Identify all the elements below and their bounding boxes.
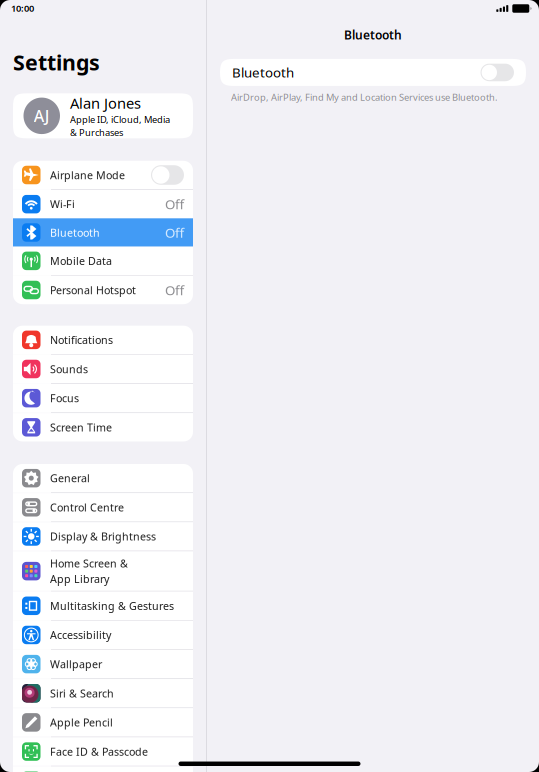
button[interactable]: Battery: [13, 766, 193, 772]
button[interactable]: Wallpaper: [13, 650, 193, 678]
button[interactable]: Face ID & Passcode: [13, 737, 193, 766]
staticText: & Purchases: [70, 126, 123, 138]
staticText: 10:00: [11, 2, 34, 14]
staticText: Focus: [50, 391, 79, 405]
button[interactable]: Multitasking & Gestures: [13, 592, 193, 620]
staticText: AJ: [34, 105, 50, 126]
button[interactable]: Airplane Mode: [13, 161, 193, 189]
staticText: Off: [165, 195, 184, 213]
button[interactable]: Siri & Search: [13, 679, 193, 707]
button[interactable]: Bluetooth: [220, 59, 526, 86]
staticText: Accessibility: [50, 628, 111, 642]
staticText: Wi-Fi: [50, 197, 75, 211]
button[interactable]: Personal Hotspot: [13, 276, 193, 304]
staticText: Multitasking & Gestures: [50, 599, 174, 613]
staticText: Sounds: [50, 362, 88, 376]
staticText: Settings: [13, 48, 100, 76]
button[interactable]: Screen Time: [13, 413, 193, 441]
staticText: Alan Jones: [70, 93, 141, 113]
button[interactable]: Sounds: [13, 355, 193, 383]
button[interactable]: Display & Brightness: [13, 522, 193, 551]
staticText: Mobile Data: [50, 254, 112, 268]
staticText: Face ID & Passcode: [50, 744, 148, 759]
staticText: Bluetooth: [50, 225, 100, 240]
staticText: Off: [165, 281, 184, 299]
staticText: Control Centre: [50, 500, 124, 514]
staticText: Screen Time: [50, 420, 112, 434]
staticText: Display & Brightness: [50, 529, 156, 544]
button[interactable]: Mobile Data: [13, 247, 193, 275]
button[interactable]: Focus: [13, 384, 193, 412]
button[interactable]: Home Screen &: [13, 551, 193, 591]
button[interactable]: Bluetooth: [13, 218, 193, 247]
staticText: Wallpaper: [50, 657, 102, 671]
staticText: Notifications: [50, 333, 113, 347]
staticText: Airplane Mode: [50, 168, 125, 182]
staticText: Personal Hotspot: [50, 283, 136, 297]
staticText: Bluetooth: [232, 64, 294, 81]
staticText: Siri & Search: [50, 686, 114, 700]
button[interactable]: AJ: [13, 93, 193, 138]
button[interactable]: Accessibility: [13, 621, 193, 649]
staticText: App Library: [50, 572, 109, 586]
button[interactable]: Notifications: [13, 326, 193, 354]
button[interactable]: Apple Pencil: [13, 708, 193, 737]
button[interactable]: Wi-Fi: [13, 190, 193, 218]
button[interactable]: Control Centre: [13, 493, 193, 521]
staticText: Home Screen &: [50, 556, 128, 570]
staticText: AirDrop, AirPlay, Find My and Location S…: [231, 91, 498, 103]
button[interactable]: General: [13, 464, 193, 492]
staticText: Apple ID, iCloud, Media: [70, 113, 170, 126]
staticText: General: [50, 471, 90, 485]
staticText: Apple Pencil: [50, 715, 113, 729]
staticText: Off: [165, 224, 184, 241]
staticText: Bluetooth: [344, 27, 402, 43]
